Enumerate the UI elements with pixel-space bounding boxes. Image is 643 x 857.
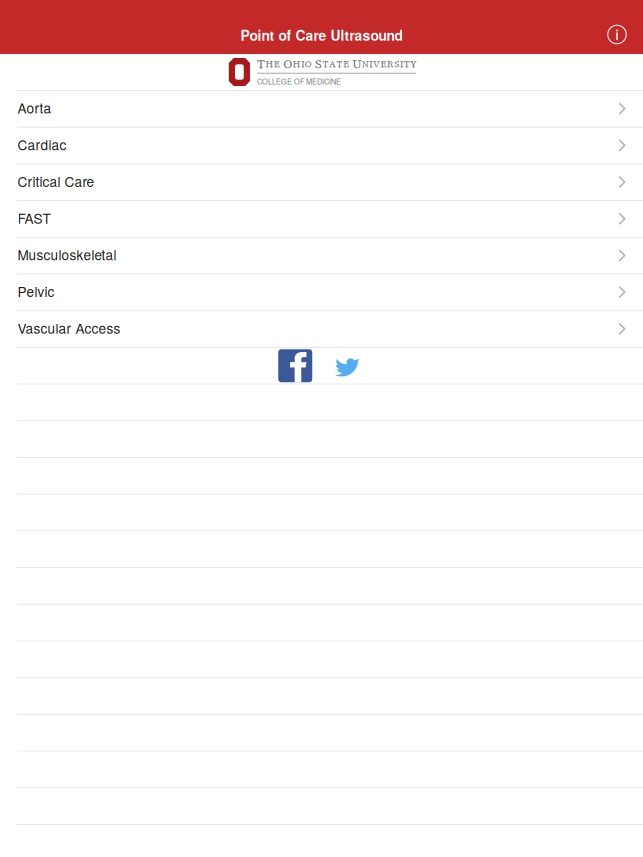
staticText: N: [362, 58, 369, 70]
staticText: Aorta: [17, 98, 51, 117]
button[interactable]: Facebook: [278, 349, 312, 382]
staticText: O: [283, 56, 292, 72]
staticText: Pelvic: [17, 281, 54, 301]
staticText: A: [329, 58, 336, 70]
staticText: T: [337, 58, 343, 70]
staticText: E: [343, 58, 349, 70]
staticText: H: [266, 58, 274, 70]
staticText: Cardiac: [17, 135, 66, 154]
staticText: T: [322, 58, 328, 70]
staticText: FAST: [17, 208, 50, 227]
staticText: E: [380, 58, 386, 70]
button[interactable]: Vascular Access: [0, 310, 643, 347]
staticText: R: [387, 58, 394, 70]
staticText: S: [394, 58, 399, 70]
button[interactable]: Cardiac: [0, 127, 643, 163]
button[interactable]: Aorta: [0, 90, 643, 127]
staticText: H: [293, 58, 301, 70]
button[interactable]: Info: [602, 19, 632, 49]
staticText: V: [373, 58, 380, 70]
staticText: U: [352, 56, 361, 72]
staticText: I: [301, 58, 304, 70]
staticText: Critical Care: [17, 171, 94, 191]
staticText: Vascular Access: [17, 318, 120, 338]
button[interactable]: Twitter: [334, 355, 358, 376]
staticText: O: [305, 58, 312, 70]
staticText: E: [274, 58, 280, 70]
staticText: I: [400, 58, 403, 70]
staticText: I: [369, 58, 372, 70]
staticText: S: [315, 56, 322, 72]
button[interactable]: Pelvic: [0, 273, 643, 310]
button[interactable]: Musculoskeletal: [0, 237, 643, 273]
button[interactable]: FAST: [0, 200, 643, 237]
staticText: COLLEGE OF MEDICINE: [257, 76, 341, 87]
staticText: T: [257, 56, 265, 72]
staticText: T: [404, 58, 410, 70]
staticText: Musculoskeletal: [17, 245, 116, 264]
button[interactable]: Critical Care: [0, 163, 643, 200]
staticText: Y: [410, 58, 416, 70]
staticText: Point of Care Ultrasound: [240, 25, 402, 45]
